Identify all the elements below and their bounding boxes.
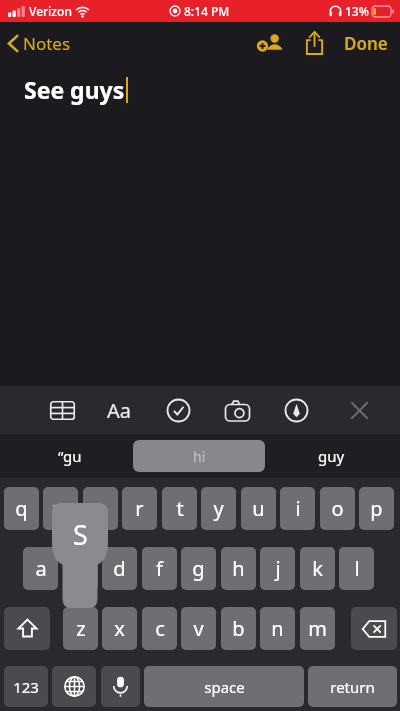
staticText: e [95,495,107,522]
button[interactable]: a [23,547,58,590]
button[interactable]: j [260,547,295,590]
staticText: j [275,555,281,582]
button[interactable]: Share [292,23,336,63]
button[interactable]: k [300,547,335,590]
staticText: o [331,495,344,522]
button[interactable]: z [63,607,98,650]
button[interactable]: Backspace [351,607,397,650]
button[interactable]: y [201,487,236,530]
button[interactable]: o [320,487,355,530]
staticText: 13% [345,3,369,19]
staticText: “gu [58,446,82,466]
staticText: a [35,555,47,582]
button[interactable]: e [83,487,118,530]
button[interactable]: return [308,666,397,707]
button[interactable]: Shift [4,607,50,650]
button[interactable]: g [181,547,216,590]
button[interactable]: space [144,666,304,707]
button[interactable]: Done [336,24,396,63]
staticText: See guys [24,74,125,105]
staticText: w [53,495,69,522]
button[interactable]: d [102,547,137,590]
button[interactable]: n [260,607,295,650]
button[interactable]: Checklist [156,388,200,432]
button[interactable]: Table [40,388,84,432]
staticText: q [15,495,28,522]
button[interactable]: Change keyboard [52,666,96,707]
button[interactable]: r [122,487,157,530]
button[interactable]: Notes [0,26,81,61]
staticText: z [76,615,86,642]
button[interactable]: c [142,607,177,650]
button[interactable]: x [102,607,137,650]
staticText: h [232,555,245,582]
button[interactable]: p [359,487,394,530]
button[interactable]: l [339,547,374,590]
button[interactable]: Add people to collaborate [248,23,292,63]
button[interactable]: Format text [97,388,141,432]
staticText: Aa [107,397,131,424]
staticText: v [193,615,204,642]
button[interactable]: f [142,547,177,590]
button[interactable]: u [241,487,276,530]
button[interactable]: h [221,547,256,590]
staticText: u [252,495,265,522]
staticText: c [155,615,165,642]
staticText: k [312,555,323,582]
button[interactable]: hi [133,440,265,472]
button[interactable]: q [4,487,39,530]
button[interactable]: t [162,487,197,530]
staticText: f [156,555,163,582]
button[interactable]: 123 [4,666,48,707]
staticText: r [135,495,144,522]
button[interactable]: m [300,607,335,650]
staticText: Done [344,32,388,55]
button[interactable]: b [221,607,256,650]
button[interactable]: Camera [215,388,259,432]
staticText: Notes [23,32,71,55]
button[interactable]: Close keyboard [337,388,381,432]
staticText: x [114,615,125,642]
staticText: return [330,677,375,697]
staticText: n [271,615,284,642]
staticText: i [295,495,301,522]
staticText: Verizon [29,3,72,19]
button[interactable]: Dictation [101,666,140,707]
staticText: S [73,516,88,553]
staticText: 8:14 PM [184,3,230,19]
staticText: m [308,615,327,642]
staticText: d [113,555,126,582]
button[interactable]: i [280,487,315,530]
staticText: guy [318,446,345,466]
button[interactable]: “gu [37,440,103,472]
staticText: p [370,495,383,522]
button[interactable]: w [43,487,78,530]
staticText: b [232,615,245,642]
button[interactable]: v [181,607,216,650]
staticText: t [176,495,184,522]
button[interactable]: guy [300,440,362,472]
staticText: l [354,555,360,582]
button[interactable]: Markup [274,388,318,432]
staticText: g [192,555,205,582]
staticText: 123 [13,677,39,697]
staticText: space [204,677,245,697]
staticText: y [213,495,224,522]
staticText: hi [193,447,206,466]
